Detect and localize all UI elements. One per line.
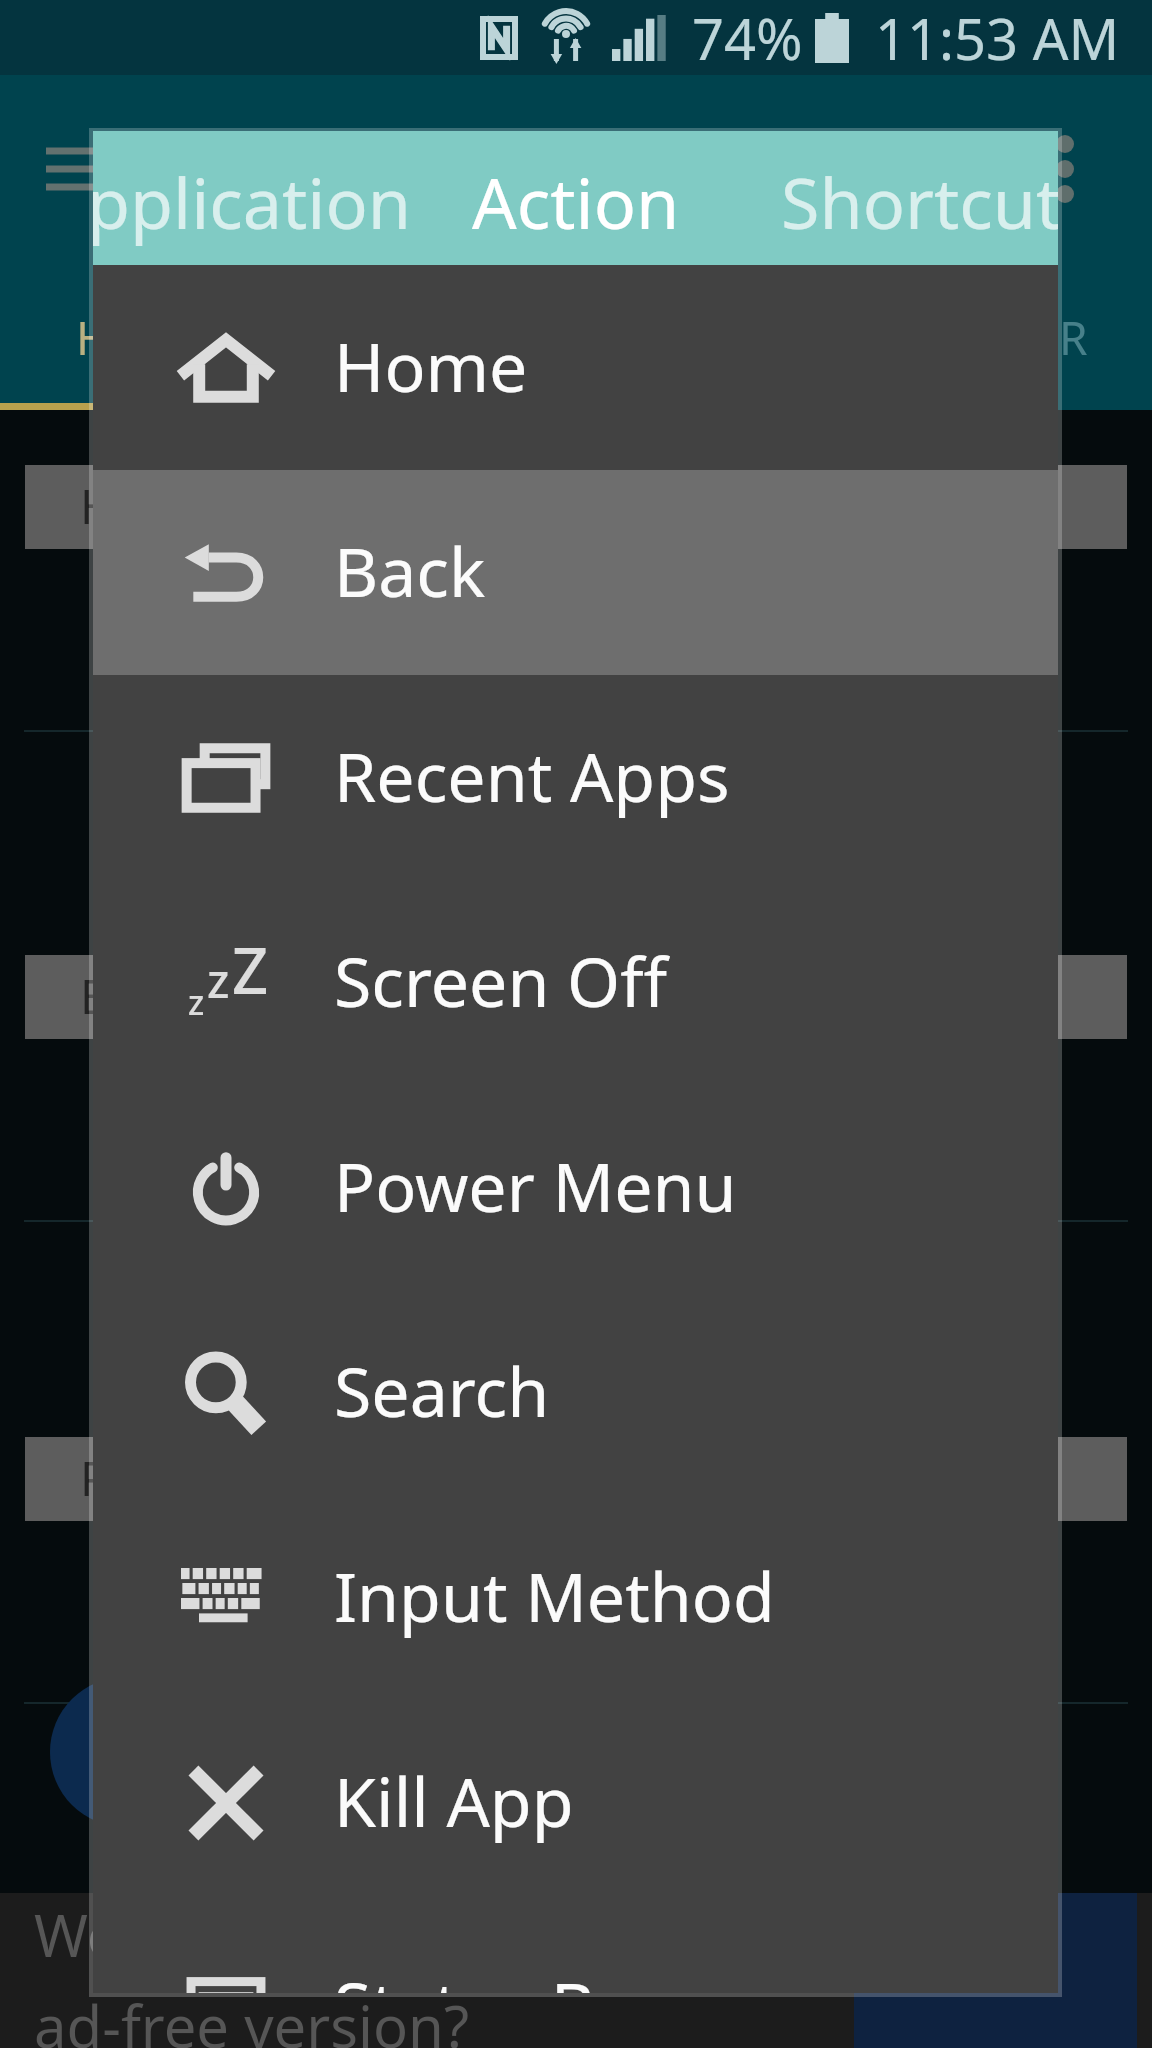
button[interactable]: More options <box>1036 131 1094 207</box>
button[interactable]: B <box>25 955 1127 1039</box>
button[interactable]: pplication <box>93 154 412 249</box>
button[interactable]: Back <box>93 470 1058 675</box>
staticText: Home <box>334 319 528 412</box>
staticText: Screen Off <box>334 934 667 1027</box>
staticText: Back <box>334 524 486 617</box>
button[interactable]: H <box>25 465 1127 549</box>
button[interactable]: H <box>76 306 111 369</box>
staticText: 74% <box>692 0 803 75</box>
staticText: ad-free version? <box>34 1986 470 2048</box>
staticText: Search <box>334 1344 550 1437</box>
button[interactable]: z <box>93 880 1058 1085</box>
staticText: H <box>80 474 115 538</box>
staticText: Wo <box>34 1895 122 1974</box>
staticText: B <box>80 964 111 1028</box>
button[interactable]: Power Menu <box>93 1085 1058 1290</box>
button[interactable]: Wo <box>0 1893 1152 2048</box>
staticText: Z <box>232 927 269 1003</box>
button[interactable]: Add <box>50 1677 200 1827</box>
button[interactable]: P <box>25 1437 1127 1521</box>
button[interactable]: Status Bar <box>93 1905 1058 1993</box>
button[interactable]: Search <box>93 1290 1058 1495</box>
staticText: P <box>80 1446 109 1510</box>
button[interactable]: Kill App <box>93 1700 1058 1905</box>
button[interactable]: Input Method <box>93 1495 1058 1700</box>
staticText: z <box>188 979 205 1025</box>
button[interactable]: Shortcut <box>781 154 1058 249</box>
button[interactable]: Home <box>93 265 1058 470</box>
button[interactable]: Navigation menu <box>40 146 102 198</box>
button[interactable]: R <box>1059 306 1088 369</box>
button[interactable]: Recent Apps <box>93 675 1058 880</box>
staticText: z <box>207 948 230 1012</box>
staticText: 11:53 AM <box>875 0 1120 75</box>
staticText: Power Menu <box>334 1139 737 1232</box>
staticText: Recent Apps <box>334 729 730 822</box>
staticText: Input Method <box>334 1549 775 1642</box>
staticText: Kill App <box>334 1754 574 1847</box>
button[interactable]: Action <box>472 154 680 249</box>
staticText: Status Bar <box>334 1959 662 1993</box>
